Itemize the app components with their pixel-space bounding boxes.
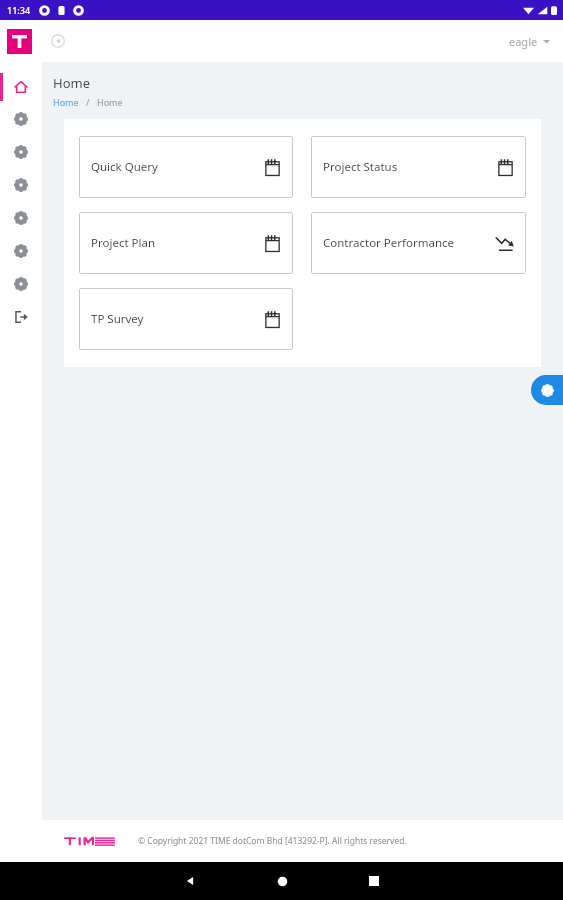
staticText: TP Survey — [91, 311, 259, 327]
staticText: / — [79, 96, 97, 108]
button[interactable]: TP Survey — [79, 288, 293, 350]
button[interactable]: Back — [144, 862, 236, 900]
button[interactable]: Quick Query — [79, 136, 293, 198]
button[interactable]: Project Plan — [79, 212, 293, 274]
button[interactable]: Recent apps — [328, 862, 420, 900]
staticText: Project Status — [323, 159, 492, 175]
button[interactable]: Menu 4 — [0, 201, 42, 234]
staticText: Contractor Performance — [323, 235, 491, 251]
staticText: Quick Query — [91, 159, 259, 175]
button[interactable]: Settings — [531, 375, 563, 405]
button[interactable]: eagle — [504, 29, 555, 54]
button[interactable]: TIME home — [7, 29, 32, 54]
button[interactable]: Back — [46, 29, 70, 53]
button[interactable]: Menu 5 — [0, 234, 42, 267]
staticText: Home — [97, 96, 123, 108]
staticText: Project Plan — [91, 235, 259, 251]
button[interactable]: Menu 1 — [0, 102, 42, 135]
button[interactable]: Logout — [0, 300, 42, 333]
button[interactable]: Menu 2 — [0, 135, 42, 168]
button[interactable]: Home — [53, 96, 79, 108]
staticText: eagle — [509, 34, 538, 49]
staticText: 11:34 — [7, 4, 31, 16]
button[interactable]: Home — [236, 862, 328, 900]
button[interactable]: Home — [0, 72, 42, 102]
button[interactable]: Contractor Performance — [311, 212, 526, 274]
staticText: © Copyright 2021 TIME dotCom Bhd [413292… — [138, 835, 407, 847]
staticText: Home — [53, 74, 90, 92]
button[interactable]: Project Status — [311, 136, 526, 198]
button[interactable]: Menu 3 — [0, 168, 42, 201]
button[interactable]: Menu 6 — [0, 267, 42, 300]
